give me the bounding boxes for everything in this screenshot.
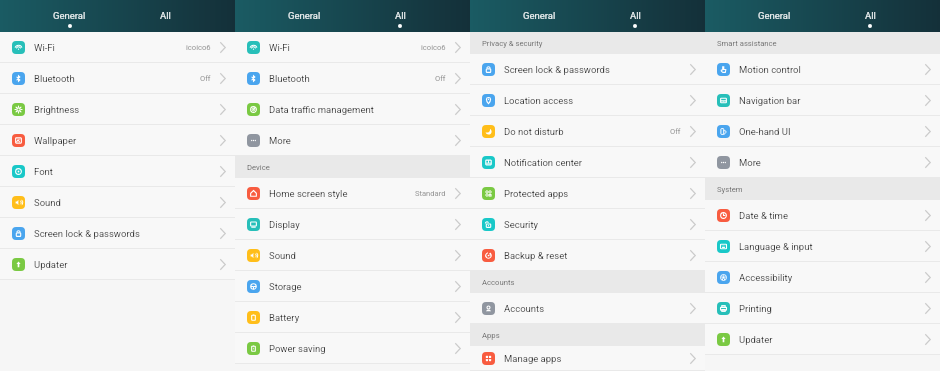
button[interactable]: Accounts <box>470 293 705 324</box>
button[interactable]: General <box>705 0 822 32</box>
button[interactable]: All <box>587 0 705 32</box>
staticText: Updater <box>34 259 211 270</box>
button[interactable]: General <box>0 0 117 32</box>
button[interactable]: Sound <box>0 187 235 218</box>
button[interactable]: Notification center <box>470 147 705 178</box>
staticText: Storage <box>269 281 446 292</box>
staticText: General <box>53 10 86 21</box>
button[interactable]: Date & time <box>705 200 940 231</box>
button[interactable]: More <box>235 125 470 156</box>
staticText: Device <box>247 163 270 172</box>
button[interactable]: Language & input <box>705 231 940 262</box>
button[interactable]: Manage apps <box>470 346 705 371</box>
staticText: Wi-Fi <box>34 42 186 53</box>
staticText: One-hand UI <box>739 126 916 137</box>
button[interactable]: Home screen style <box>235 178 470 209</box>
button[interactable]: Security <box>470 209 705 240</box>
button[interactable]: Wallpaper <box>0 125 235 156</box>
button[interactable]: Sound <box>235 240 470 271</box>
staticText: Accounts <box>482 278 515 287</box>
staticText: Privacy & security <box>482 39 543 48</box>
staticText: General <box>523 10 556 21</box>
staticText: More <box>739 157 916 168</box>
staticText: Protected apps <box>504 188 681 199</box>
staticText: Notification center <box>504 157 681 168</box>
staticText: All <box>865 10 876 21</box>
button[interactable]: All <box>352 0 470 32</box>
staticText: Security <box>504 219 681 230</box>
button[interactable]: Power saving <box>235 333 470 364</box>
button[interactable]: Bluetooth <box>235 63 470 94</box>
staticText: Location access <box>504 95 681 106</box>
staticText: Manage apps <box>504 353 681 364</box>
staticText: Standard <box>415 189 446 198</box>
staticText: Data traffic management <box>269 104 446 115</box>
staticText: Smart assistance <box>717 39 777 48</box>
staticText: Brightness <box>34 104 211 115</box>
staticText: Wi-Fi <box>269 42 421 53</box>
button[interactable]: Printing <box>705 293 940 324</box>
button[interactable]: Accessibility <box>705 262 940 293</box>
staticText: icoico6 <box>421 43 446 52</box>
button[interactable]: All <box>117 0 235 32</box>
staticText: All <box>630 10 641 21</box>
staticText: Screen lock & passwords <box>504 64 681 75</box>
staticText: Battery <box>269 312 446 323</box>
staticText: Off <box>200 74 211 83</box>
button[interactable]: Battery <box>235 302 470 333</box>
button[interactable]: More <box>705 147 940 178</box>
staticText: Printing <box>739 303 916 314</box>
staticText: System <box>717 185 743 194</box>
button[interactable]: Motion control <box>705 54 940 85</box>
staticText: All <box>160 10 171 21</box>
staticText: Off <box>435 74 446 83</box>
button[interactable]: One-hand UI <box>705 116 940 147</box>
staticText: Bluetooth <box>269 73 435 84</box>
button[interactable]: Data traffic management <box>235 94 470 125</box>
staticText: icoico6 <box>186 43 211 52</box>
staticText: Navigation bar <box>739 95 916 106</box>
staticText: More <box>269 135 446 146</box>
button[interactable]: Screen lock & passwords <box>0 218 235 249</box>
staticText: Sound <box>269 250 446 261</box>
button[interactable]: Display <box>235 209 470 240</box>
staticText: Motion control <box>739 64 916 75</box>
staticText: Updater <box>739 334 916 345</box>
button[interactable]: Storage <box>235 271 470 302</box>
staticText: Backup & reset <box>504 250 681 261</box>
staticText: Accessibility <box>739 272 916 283</box>
button[interactable]: Wi-Fi <box>0 32 235 63</box>
button[interactable]: Updater <box>705 324 940 355</box>
staticText: Display <box>269 219 446 230</box>
button[interactable]: Updater <box>0 249 235 280</box>
button[interactable]: Navigation bar <box>705 85 940 116</box>
staticText: Bluetooth <box>34 73 200 84</box>
button[interactable]: Do not disturb <box>470 116 705 147</box>
staticText: General <box>288 10 321 21</box>
button[interactable]: Bluetooth <box>0 63 235 94</box>
button[interactable]: Location access <box>470 85 705 116</box>
staticText: Do not disturb <box>504 126 670 137</box>
button[interactable]: General <box>470 0 587 32</box>
button[interactable]: Font <box>0 156 235 187</box>
staticText: Accounts <box>504 303 681 314</box>
staticText: Font <box>34 166 211 177</box>
staticText: All <box>395 10 406 21</box>
button[interactable]: Protected apps <box>470 178 705 209</box>
button[interactable]: Backup & reset <box>470 240 705 271</box>
button[interactable]: Wi-Fi <box>235 32 470 63</box>
staticText: Off <box>670 127 681 136</box>
button[interactable]: Brightness <box>0 94 235 125</box>
staticText: Home screen style <box>269 188 415 199</box>
staticText: Power saving <box>269 343 446 354</box>
staticText: Apps <box>482 331 500 340</box>
staticText: Wallpaper <box>34 135 211 146</box>
staticText: General <box>758 10 791 21</box>
staticText: Screen lock & passwords <box>34 228 211 239</box>
button[interactable]: All <box>822 0 940 32</box>
staticText: Language & input <box>739 241 916 252</box>
staticText: Sound <box>34 197 211 208</box>
button[interactable]: General <box>235 0 352 32</box>
button[interactable]: Screen lock & passwords <box>470 54 705 85</box>
staticText: Date & time <box>739 210 916 221</box>
